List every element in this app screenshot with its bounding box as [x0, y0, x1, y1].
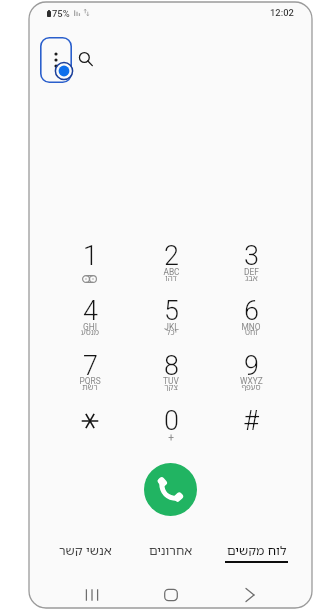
button[interactable]: [144, 400, 198, 450]
button[interactable]: [224, 290, 278, 340]
button[interactable]: [63, 345, 117, 395]
staticText: אבג: [245, 273, 258, 284]
staticText: 9: [244, 350, 259, 382]
staticText: צקך: [164, 382, 178, 393]
button[interactable]: [144, 290, 198, 340]
staticText: 1: [83, 240, 98, 272]
staticText: לוח מקשים: [227, 542, 287, 556]
staticText: דהו: [165, 273, 177, 284]
staticText: DEF: [244, 267, 259, 277]
staticText: 3: [244, 240, 259, 272]
staticText: זחט: [245, 327, 258, 338]
button[interactable]: Back: [228, 581, 272, 608]
staticText: 75%: [52, 8, 70, 19]
staticText: GHI: [83, 322, 97, 332]
staticText: JKL: [164, 322, 179, 332]
staticText: 7: [83, 350, 98, 382]
button[interactable]: Recent apps: [70, 581, 114, 608]
staticText: PQRS: [79, 376, 101, 386]
button[interactable]: [224, 400, 278, 450]
staticText: 2: [164, 240, 179, 272]
staticText: +: [168, 432, 174, 444]
staticText: #: [243, 405, 259, 437]
staticText: מנסע: [81, 327, 99, 338]
staticText: 0: [164, 405, 179, 437]
staticText: סעפף: [241, 382, 261, 393]
button[interactable]: אנשי קשר: [39, 531, 131, 567]
staticText: ABC: [163, 267, 180, 277]
staticText: TUV: [163, 376, 179, 386]
staticText: רשת: [82, 382, 98, 393]
button[interactable]: [144, 345, 198, 395]
staticText: 8: [164, 350, 179, 382]
staticText: 12:02: [270, 7, 294, 18]
staticText: יכל: [166, 327, 177, 338]
button[interactable]: Call: [144, 463, 197, 516]
button[interactable]: More options: [40, 37, 72, 83]
button[interactable]: [63, 235, 117, 285]
button[interactable]: [224, 235, 278, 285]
staticText: אנשי קשר: [59, 542, 112, 556]
staticText: אחרונים: [149, 542, 193, 556]
button[interactable]: Home: [149, 581, 193, 608]
staticText: 5: [164, 295, 179, 327]
button[interactable]: אחרונים: [125, 531, 217, 567]
staticText: 6: [244, 295, 259, 327]
button[interactable]: [63, 400, 117, 450]
button[interactable]: [63, 290, 117, 340]
button[interactable]: [224, 345, 278, 395]
button[interactable]: [144, 235, 198, 285]
staticText: 4: [83, 295, 98, 327]
staticText: WXYZ: [240, 376, 263, 386]
button[interactable]: Search: [75, 48, 94, 67]
staticText: MNO: [241, 322, 261, 332]
button[interactable]: לוח מקשים: [210, 531, 302, 567]
